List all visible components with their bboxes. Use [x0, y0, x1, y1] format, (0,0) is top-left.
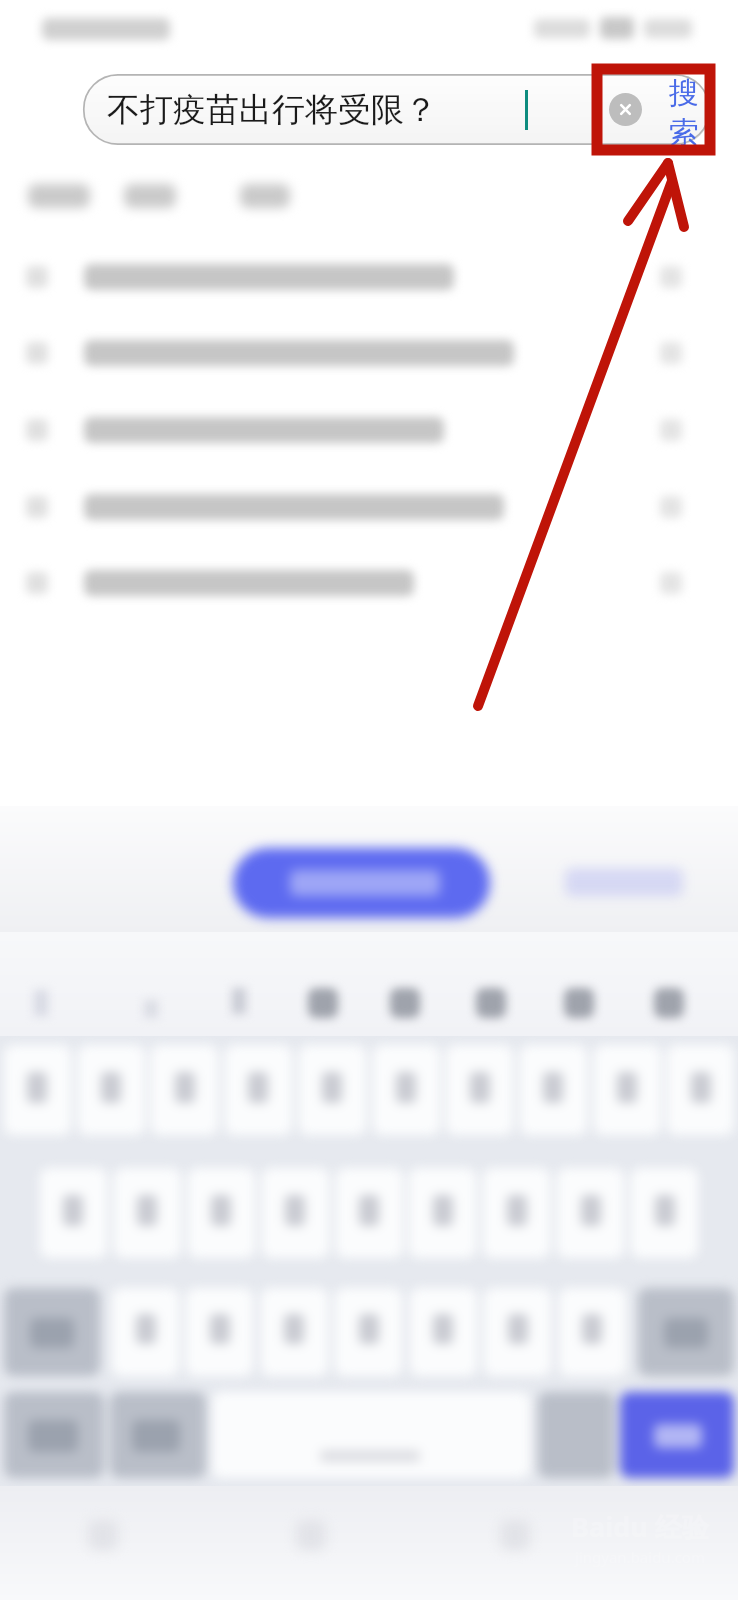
staticText: 不打疫苗出行将受限？: [107, 89, 437, 131]
button[interactable]: 搜索: [658, 74, 710, 145]
button[interactable]: 不打疫苗出行将受限？: [107, 74, 527, 145]
staticText: 搜索: [658, 74, 710, 145]
button[interactable]: 清除: [609, 93, 642, 126]
